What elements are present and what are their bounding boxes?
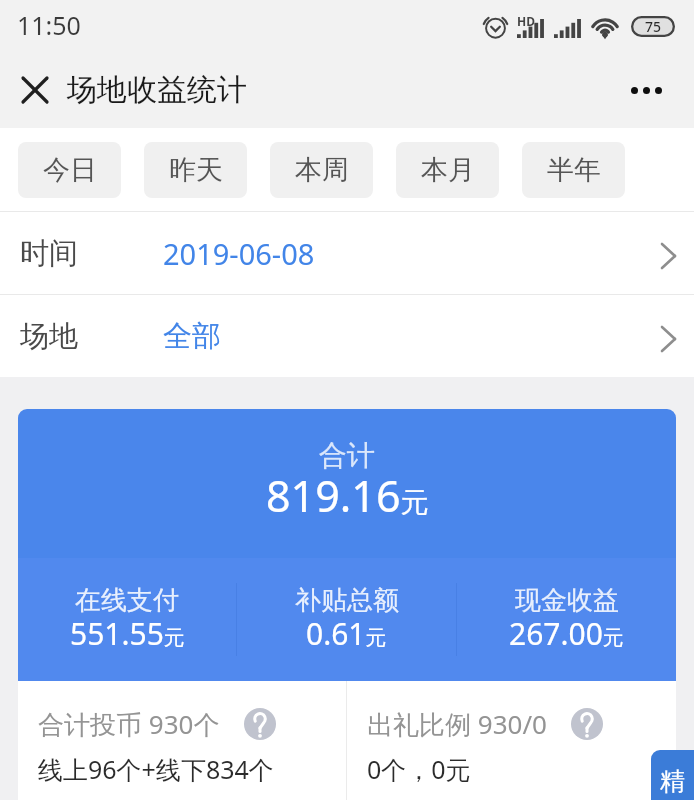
staticText: 0个，0元 bbox=[367, 752, 471, 786]
staticText: 本月 bbox=[421, 153, 475, 187]
button[interactable]: 精算 bbox=[651, 750, 694, 800]
staticText: 合计投币 930个 bbox=[38, 706, 220, 742]
staticText: 精算 bbox=[651, 766, 694, 800]
staticText: 昨天 bbox=[169, 153, 223, 187]
staticText: 补贴总额 bbox=[295, 584, 399, 617]
staticText: 线上96个+线下834个 bbox=[38, 752, 274, 786]
button[interactable]: 本周 bbox=[270, 142, 373, 198]
button[interactable]: 本月 bbox=[396, 142, 499, 198]
staticText: 今日 bbox=[43, 153, 97, 187]
button[interactable]: 昨天 bbox=[144, 142, 247, 198]
button[interactable]: Help bbox=[571, 708, 603, 740]
staticText: 267.00元 bbox=[509, 613, 624, 654]
staticText: 出礼比例 930/0 bbox=[367, 706, 547, 742]
staticText: 半年 bbox=[547, 153, 601, 187]
staticText: 2019-06-08 bbox=[163, 234, 315, 273]
staticText: 0.61元 bbox=[306, 613, 387, 654]
button[interactable]: 半年 bbox=[522, 142, 625, 198]
button[interactable]: 场地 bbox=[0, 295, 694, 377]
staticText: 合计 bbox=[319, 438, 375, 473]
staticText: 本周 bbox=[295, 153, 349, 187]
staticText: 在线支付 bbox=[75, 584, 179, 617]
staticText: HD bbox=[517, 13, 535, 29]
button[interactable]: Close bbox=[8, 63, 62, 117]
staticText: 场地 bbox=[20, 318, 78, 355]
staticText: 场地收益统计 bbox=[67, 71, 247, 109]
staticText: 现金收益 bbox=[515, 584, 619, 617]
button[interactable]: More options bbox=[619, 63, 673, 117]
staticText: 819.16元 bbox=[266, 466, 429, 525]
staticText: 551.55元 bbox=[70, 613, 185, 654]
button[interactable]: 今日 bbox=[18, 142, 121, 198]
staticText: 75 bbox=[645, 17, 662, 36]
button[interactable]: 时间 bbox=[0, 212, 694, 294]
staticText: 11:50 bbox=[17, 8, 81, 42]
staticText: 全部 bbox=[163, 318, 221, 355]
button[interactable]: Help bbox=[244, 708, 276, 740]
staticText: 时间 bbox=[20, 235, 78, 272]
